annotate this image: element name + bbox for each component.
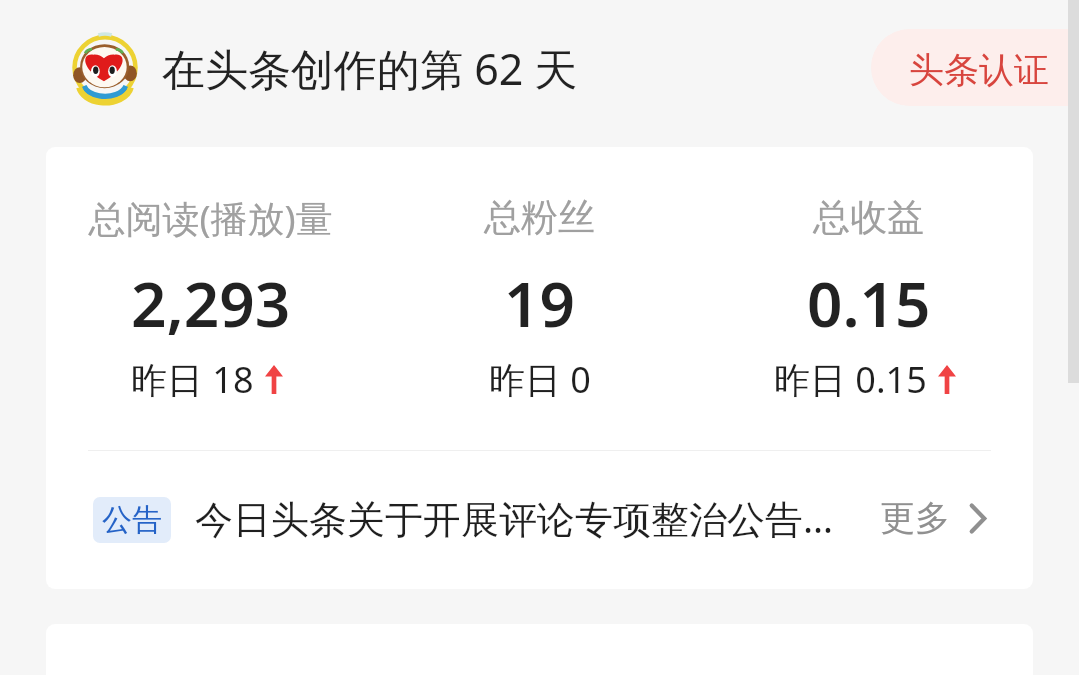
other: More: [969, 503, 987, 534]
staticText: 19: [504, 261, 575, 345]
other: Increase: [938, 365, 956, 394]
other: Increase: [265, 365, 283, 394]
staticText: 在头条创作的第 62 天: [162, 39, 578, 98]
other: Avatar: [70, 34, 140, 104]
staticText: 头条认证: [909, 48, 1049, 92]
staticText: 总粉丝: [484, 194, 595, 241]
button[interactable]: 总粉丝: [375, 177, 704, 410]
button[interactable]: 更多: [880, 496, 987, 540]
staticText: 总阅读(播放)量: [88, 192, 333, 243]
staticText: 总收益: [813, 194, 924, 241]
staticText: 公告: [102, 501, 162, 539]
button[interactable]: 公告: [46, 449, 1033, 587]
staticText: 今日头条关于开展评论专项整治公告…: [195, 492, 834, 544]
staticText: 昨日 0: [489, 355, 591, 404]
button[interactable]: 头条认证: [871, 29, 1079, 106]
staticText: 昨日 0.15: [774, 355, 927, 404]
staticText: 0.15: [807, 261, 931, 345]
staticText: 2,293: [131, 261, 291, 345]
staticText: 昨日 18: [131, 355, 254, 404]
button[interactable]: Avatar: [70, 20, 578, 116]
button[interactable]: 总收益: [704, 177, 1033, 410]
button[interactable]: 总阅读(播放)量: [46, 177, 375, 410]
staticText: 更多: [880, 496, 950, 540]
